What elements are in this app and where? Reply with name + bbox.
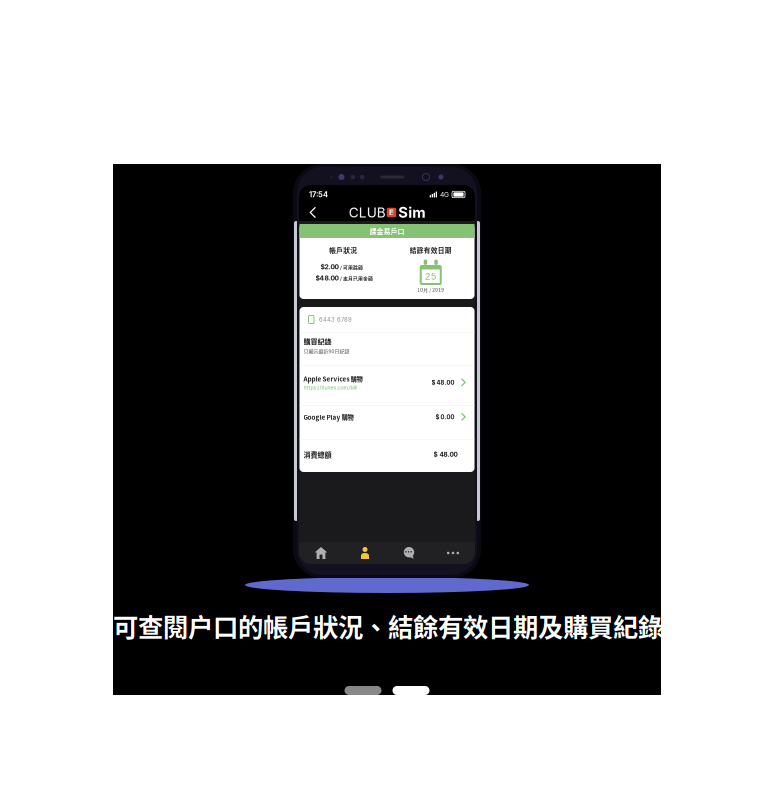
staticText: 4G xyxy=(440,190,449,199)
staticText: $ 48.00 xyxy=(431,379,454,386)
staticText: CLUB xyxy=(349,204,386,221)
staticText: https://itunes.com/bill xyxy=(303,384,356,391)
staticText: $ 48.00 xyxy=(433,451,457,458)
staticText: Google Play 購物 xyxy=(303,412,353,422)
staticText: 17:54 xyxy=(309,190,328,199)
staticText: Sim xyxy=(398,204,425,221)
staticText: 可查閱户口的帳戶狀況、結餘有效日期及購買紀錄 xyxy=(113,607,663,644)
staticText: $2.00 xyxy=(320,263,338,271)
button[interactable]: Chat xyxy=(387,542,431,564)
button[interactable]: Account xyxy=(343,542,387,564)
staticText: 6443 6789 xyxy=(319,316,352,323)
staticText: 課金易戶口 xyxy=(369,226,404,236)
staticText: 購買紀錄 xyxy=(303,336,331,346)
staticText: 帳戶狀況 xyxy=(329,245,357,255)
staticText: 只顯示最近90日紀錄 xyxy=(303,347,349,355)
button[interactable]: Home xyxy=(299,542,343,564)
staticText: $ 0.00 xyxy=(435,413,454,421)
staticText: / 本月已用金額 xyxy=(340,275,373,282)
button[interactable]: Back xyxy=(303,202,323,222)
staticText: 10月 / 2019 xyxy=(417,286,444,293)
button[interactable]: Google Play 購物 xyxy=(299,405,474,439)
staticText: 25 xyxy=(425,271,437,282)
staticText: Apple Services 購物 xyxy=(303,374,362,383)
staticText: $48.00 xyxy=(315,274,338,282)
staticText: 消費總額 xyxy=(303,449,331,460)
staticText: / 可用餘額 xyxy=(340,264,363,271)
staticText: 結餘有效日期 xyxy=(410,245,452,255)
staticText: E xyxy=(389,208,394,217)
button[interactable]: Apple Services 購物 xyxy=(299,366,474,405)
button[interactable]: More xyxy=(431,542,475,564)
